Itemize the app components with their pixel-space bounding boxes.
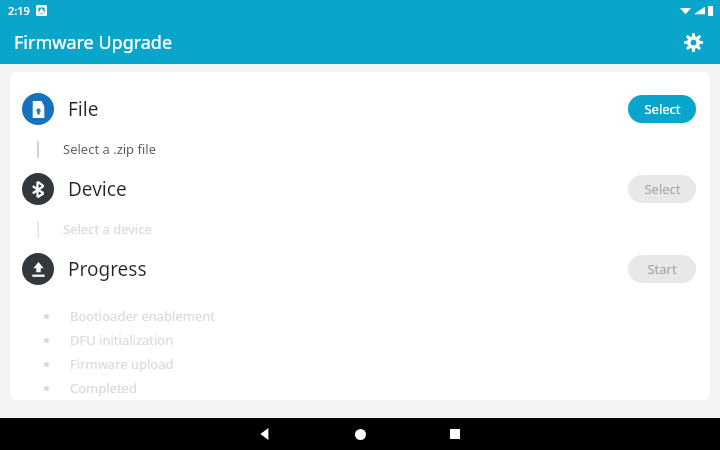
staticText: DFU initialization <box>70 331 174 349</box>
staticText: 2:19 <box>8 3 30 18</box>
staticText: Start <box>647 260 677 278</box>
staticText: File <box>68 96 99 122</box>
staticText: Select <box>644 100 681 118</box>
staticText: Select a device <box>63 220 152 238</box>
staticText: Progress <box>68 256 147 282</box>
button[interactable]: Select <box>628 95 696 123</box>
staticText: Select <box>644 180 681 198</box>
staticText: Firmware Upgrade <box>14 30 173 55</box>
staticText: Bootloader enablement <box>70 307 216 325</box>
button[interactable]: Recent apps <box>438 418 472 450</box>
staticText: Completed <box>70 379 137 397</box>
button[interactable]: Settings <box>676 25 710 59</box>
button[interactable]: Back <box>248 418 282 450</box>
staticText: Select a .zip file <box>63 140 156 158</box>
button[interactable]: Select <box>628 175 696 203</box>
button[interactable]: Home <box>343 418 377 450</box>
staticText: Device <box>68 176 127 202</box>
button[interactable]: Start <box>628 255 696 283</box>
staticText: Firmware upload <box>70 355 174 373</box>
